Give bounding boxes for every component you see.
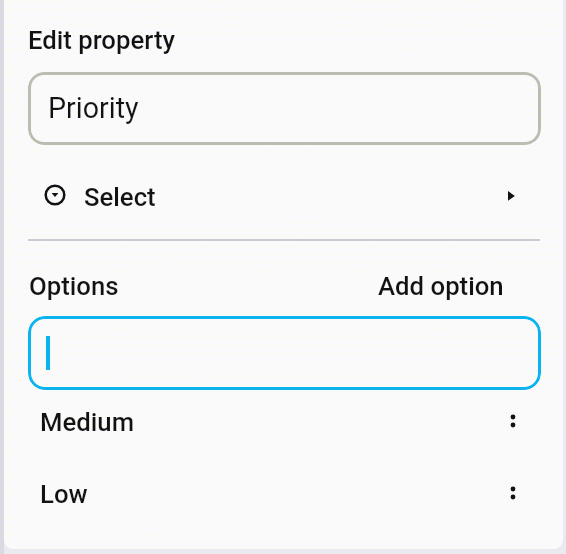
staticText: Add option (378, 271, 504, 301)
button[interactable]: More options (489, 469, 537, 517)
button[interactable]: Priority (28, 72, 541, 145)
staticText: Medium (40, 407, 134, 437)
staticText: Options (29, 271, 119, 301)
staticText: Edit property (28, 25, 175, 55)
staticText: Select (84, 182, 156, 212)
staticText: Low (40, 479, 88, 509)
button[interactable]: Select (28, 160, 545, 230)
button[interactable]: Medium (4, 385, 544, 447)
button[interactable] (28, 316, 541, 390)
staticText: Priority (48, 91, 139, 125)
button[interactable]: More options (489, 397, 537, 445)
button[interactable]: Low (4, 457, 544, 519)
button[interactable]: Add option (370, 264, 510, 298)
